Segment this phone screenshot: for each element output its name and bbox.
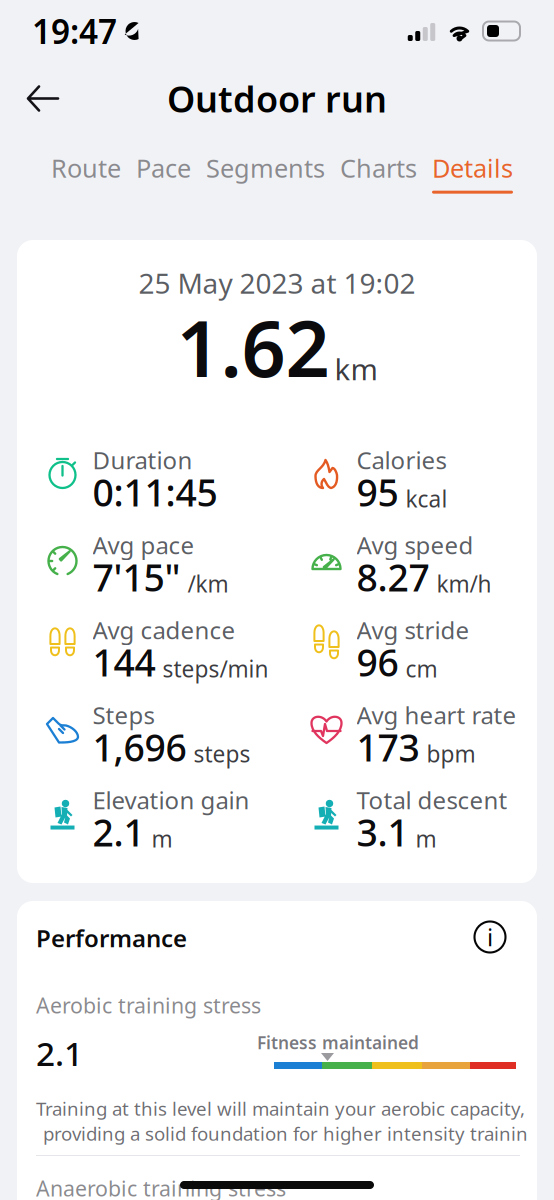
- staticText: Performance: [36, 922, 187, 954]
- staticText: Avg cadence: [92, 614, 235, 646]
- staticText: Details: [432, 151, 513, 185]
- staticText: km: [334, 349, 377, 388]
- staticText: Total descent: [356, 784, 507, 816]
- staticText: providing a solid foundation for higher …: [43, 1121, 528, 1146]
- staticText: Outdoor run: [167, 75, 387, 122]
- button[interactable]: Route: [51, 135, 121, 194]
- staticText: Calories: [356, 444, 446, 476]
- staticText: 2.1: [92, 807, 144, 857]
- staticText: Segments: [206, 151, 325, 185]
- staticText: steps/min: [162, 654, 268, 684]
- staticText: 1,696: [92, 722, 186, 772]
- staticText: 25 May 2023 at 19:02: [138, 264, 415, 302]
- staticText: Avg speed: [356, 529, 473, 561]
- staticText: Route: [51, 151, 121, 185]
- staticText: Training at this level will maintain you…: [36, 1096, 525, 1121]
- staticText: /km: [187, 569, 228, 599]
- staticText: Steps: [92, 699, 154, 731]
- staticText: Duration: [92, 444, 192, 476]
- staticText: 3.1: [356, 807, 408, 857]
- staticText: 8.27: [356, 552, 429, 602]
- staticText: kcal: [405, 484, 447, 514]
- button[interactable]: Segments: [206, 135, 325, 194]
- staticText: m: [151, 824, 172, 854]
- staticText: Anaerobic training stress: [36, 1174, 286, 1200]
- staticText: 95: [356, 467, 398, 517]
- staticText: m: [415, 824, 436, 854]
- staticText: Fitness maintained: [257, 1031, 419, 1054]
- button[interactable]: Pace: [136, 135, 191, 194]
- staticText: bpm: [426, 739, 475, 769]
- button[interactable]: Details: [432, 135, 513, 194]
- staticText: 96: [356, 637, 398, 687]
- staticText: 0:11:45: [92, 467, 217, 517]
- staticText: Avg stride: [356, 614, 469, 646]
- staticText: steps: [193, 739, 250, 769]
- staticText: Aerobic training stress: [36, 991, 261, 1019]
- staticText: km/h: [436, 569, 491, 599]
- staticText: Pace: [136, 151, 191, 185]
- staticText: 173: [356, 722, 419, 772]
- staticText: 144: [92, 637, 155, 687]
- button[interactable]: Charts: [340, 135, 417, 194]
- staticText: Charts: [340, 151, 417, 185]
- staticText: Avg heart rate: [356, 699, 516, 731]
- staticText: 2.1: [36, 1031, 83, 1075]
- staticText: Elevation gain: [92, 784, 249, 816]
- button[interactable]: Information: [472, 919, 508, 955]
- staticText: Avg pace: [92, 529, 194, 561]
- staticText: 19:47: [32, 9, 117, 53]
- staticText: i: [487, 921, 493, 953]
- button[interactable]: Back: [17, 72, 69, 124]
- staticText: 1.62: [176, 296, 329, 398]
- staticText: 7'15": [92, 552, 180, 602]
- staticText: cm: [405, 654, 437, 684]
